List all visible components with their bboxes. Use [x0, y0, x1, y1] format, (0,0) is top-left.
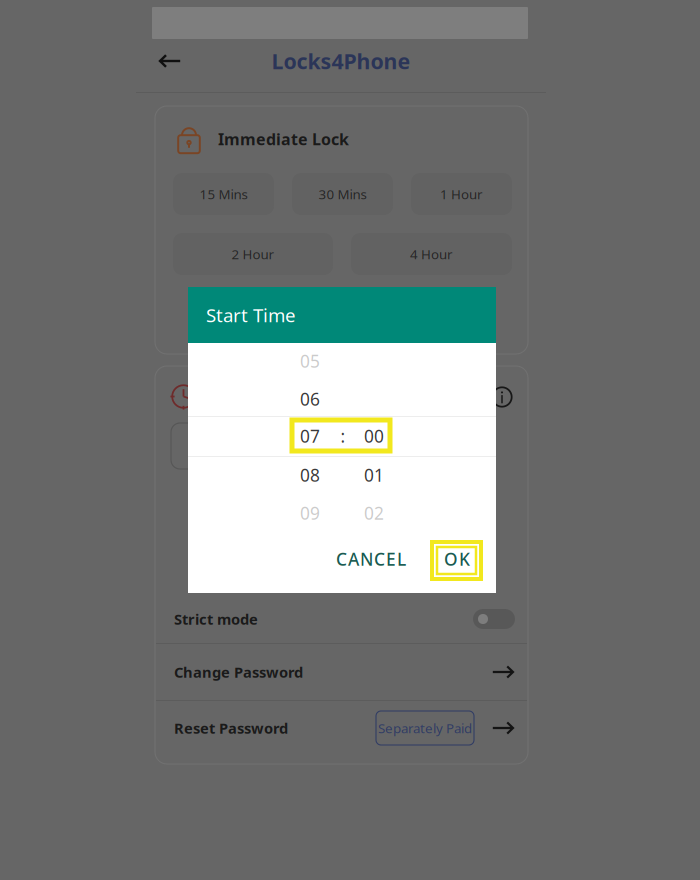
button[interactable]: 30 Mins [292, 173, 393, 215]
staticText: : [340, 424, 345, 447]
staticText: 02 [364, 501, 384, 524]
button[interactable]: OK [437, 541, 477, 577]
button[interactable]: 1 Hour [411, 173, 512, 215]
staticText: Reset Password [174, 718, 288, 738]
staticText: 1 Hour [440, 185, 483, 203]
staticText: 15 Mins [199, 185, 247, 203]
button[interactable]: Back [159, 50, 181, 72]
staticText: 2 Hour [231, 245, 274, 263]
staticText: 30 Mins [318, 185, 366, 203]
staticText: 05 [300, 349, 320, 372]
button[interactable]: 15 Mins [173, 173, 274, 215]
staticText: Strict mode [174, 609, 258, 629]
button[interactable]: Strict mode [156, 593, 527, 643]
button[interactable]: CANCEL [324, 541, 418, 577]
button[interactable]: Reset Password [156, 702, 527, 762]
staticText: OK [444, 547, 470, 570]
staticText: 01 [364, 463, 384, 486]
staticText: Change Password [174, 662, 303, 682]
staticText: 08 [300, 463, 320, 486]
staticText: 00 [364, 424, 384, 447]
staticText: Locks4Phone [271, 47, 410, 75]
staticText: 07 [300, 424, 320, 447]
staticText: Immediate Lock [218, 128, 349, 150]
staticText: CANCEL [336, 547, 406, 570]
staticText: 06 [300, 387, 320, 410]
staticText: Separately Paid [378, 719, 472, 737]
staticText: 09 [300, 501, 320, 524]
staticText: 4 Hour [410, 245, 453, 263]
staticText: Start Time [206, 303, 296, 327]
button[interactable]: Change Password [156, 645, 527, 700]
button[interactable]: 4 Hour [351, 233, 512, 275]
button[interactable]: 2 Hour [173, 233, 333, 275]
